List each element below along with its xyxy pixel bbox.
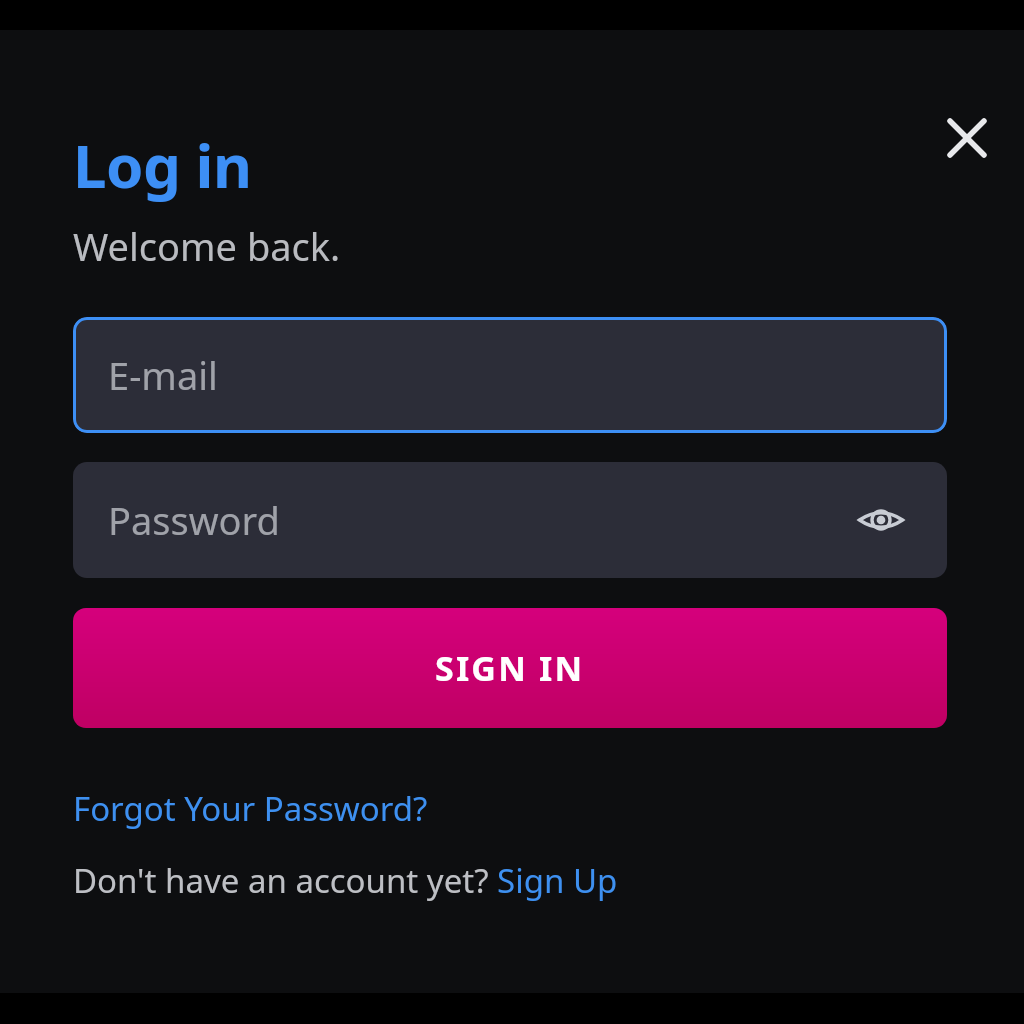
button[interactable]: Show password [853,492,909,548]
staticText: Log in [73,124,252,206]
staticText: SIGN IN [435,645,585,691]
button[interactable]: Close [931,102,1003,174]
staticText: Welcome back. [73,220,341,272]
button[interactable]: Don't have an account yet? Sign Up [73,858,618,903]
button[interactable]: E-mail [73,317,947,433]
staticText: Forgot Your Password? [73,786,428,831]
button[interactable]: Forgot Your Password? [73,786,428,831]
staticText: E-mail [108,349,218,401]
button[interactable]: SIGN IN [73,608,947,728]
staticText: Don't have an account yet? Sign Up [73,858,618,903]
button[interactable]: Password [73,462,947,578]
staticText: Password [108,494,280,546]
